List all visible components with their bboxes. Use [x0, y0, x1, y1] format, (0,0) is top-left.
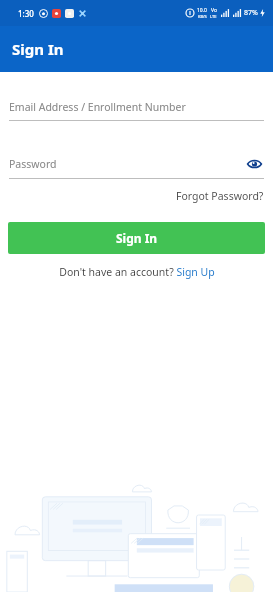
- staticText: LTE: [210, 14, 217, 19]
- button[interactable]: Forgot Password?: [176, 187, 264, 205]
- staticText: Vo: [211, 7, 217, 14]
- button[interactable]: Sign In: [8, 222, 265, 254]
- staticText: 87%: [244, 8, 258, 18]
- staticText: Don't have an account? Sign Up: [59, 265, 215, 279]
- button[interactable]: Password: [9, 154, 264, 179]
- staticText: Forgot Password?: [176, 189, 264, 203]
- button[interactable]: Don't have an account? Sign Up: [0, 265, 273, 279]
- staticText: Email Address / Enrollment Number: [9, 100, 186, 114]
- staticText: Sign In: [12, 39, 64, 59]
- staticText: 10.0: [197, 7, 207, 14]
- button[interactable]: Email Address / Enrollment Number: [9, 100, 264, 121]
- button[interactable]: Show password: [244, 154, 264, 174]
- staticText: 1:30: [18, 8, 34, 19]
- staticText: Password: [9, 157, 57, 171]
- staticText: Sign In: [116, 230, 158, 246]
- staticText: KB/S: [198, 14, 207, 19]
